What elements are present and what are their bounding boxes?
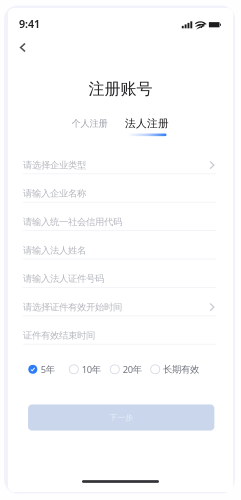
staticText: 9:41 [19, 17, 40, 31]
staticText: 请选择证件有效开始时间 [23, 301, 122, 313]
staticText: 请输入企业名称 [23, 188, 86, 199]
staticText: 证件有效结束时间 [23, 330, 95, 341]
staticText: 长期有效 [163, 364, 199, 375]
staticText: 10年 [82, 363, 101, 375]
button[interactable]: 法人注册 [125, 117, 169, 136]
button[interactable]: Back [12, 36, 34, 58]
button[interactable]: 10年 [69, 363, 101, 376]
staticText: 请输入法人姓名 [23, 245, 86, 256]
staticText: 法人注册 [125, 117, 169, 130]
button[interactable]: 20年 [110, 363, 142, 376]
staticText: 请输入统一社会信用代码 [23, 216, 122, 228]
button[interactable]: 请输入企业名称 [8, 174, 233, 203]
button[interactable]: 5年 [28, 363, 55, 376]
button[interactable]: 下一步 [28, 404, 214, 430]
staticText: 注册账号 [88, 79, 152, 99]
button[interactable]: 个人注册 [70, 117, 109, 136]
button[interactable]: 请输入法人姓名 [8, 231, 233, 259]
button[interactable]: 证件有效结束时间 [8, 316, 233, 345]
button[interactable]: 请输入法人证件号码 [8, 259, 233, 288]
staticText: 请选择企业类型 [23, 159, 86, 171]
staticText: 5年 [41, 363, 55, 375]
button[interactable]: 长期有效 [151, 363, 199, 376]
staticText: 下一步 [109, 413, 133, 422]
staticText: 20年 [123, 363, 142, 375]
staticText: 请输入法人证件号码 [23, 273, 104, 284]
button[interactable]: 请选择证件有效开始时间 [8, 288, 233, 316]
button[interactable]: 请选择企业类型 [8, 146, 233, 174]
button[interactable]: 请输入统一社会信用代码 [8, 203, 233, 231]
staticText: 个人注册 [71, 118, 107, 129]
